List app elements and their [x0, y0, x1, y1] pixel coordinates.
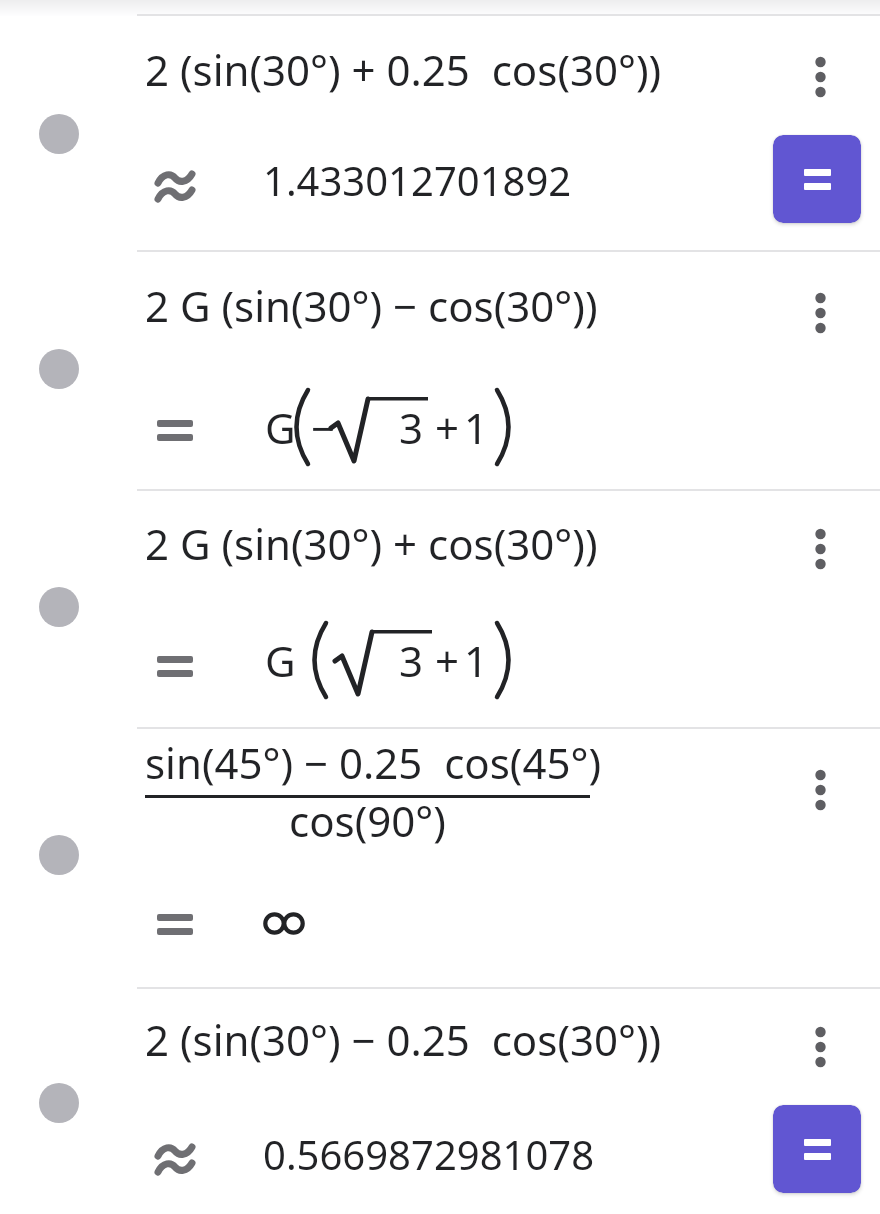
- staticText: 1.433012701892: [263, 153, 572, 207]
- button[interactable]: [808, 1022, 833, 1072]
- staticText: 3: [399, 632, 424, 689]
- staticText: +: [435, 399, 460, 456]
- staticText: cos(90°): [289, 792, 446, 849]
- staticText: 0.5669872981078: [263, 1127, 595, 1181]
- staticText: 2 (sin(30°) − 0.25 cos(30°)): [145, 1011, 662, 1068]
- button[interactable]: [39, 349, 79, 389]
- button[interactable]: [808, 765, 833, 815]
- button[interactable]: [773, 135, 861, 223]
- staticText: 2 G (sin(30°) − cos(30°)): [145, 277, 598, 334]
- staticText: +: [435, 632, 460, 689]
- staticText: G: [265, 399, 296, 456]
- button[interactable]: [808, 524, 833, 574]
- staticText: G: [265, 632, 296, 689]
- button[interactable]: [39, 587, 79, 627]
- staticText: 1: [464, 399, 489, 456]
- staticText: 3: [399, 399, 424, 456]
- staticText: 2 (sin(30°) + 0.25 cos(30°)): [145, 41, 662, 98]
- button[interactable]: [808, 288, 833, 338]
- button[interactable]: [39, 835, 79, 875]
- button[interactable]: [808, 52, 833, 102]
- button[interactable]: [39, 1083, 79, 1123]
- button[interactable]: [773, 1105, 861, 1193]
- button[interactable]: [39, 114, 79, 154]
- staticText: 2 G (sin(30°) + cos(30°)): [145, 515, 598, 572]
- staticText: −: [311, 399, 336, 456]
- staticText: 1: [464, 632, 489, 689]
- staticText: sin(45°) − 0.25 cos(45°): [145, 734, 602, 791]
